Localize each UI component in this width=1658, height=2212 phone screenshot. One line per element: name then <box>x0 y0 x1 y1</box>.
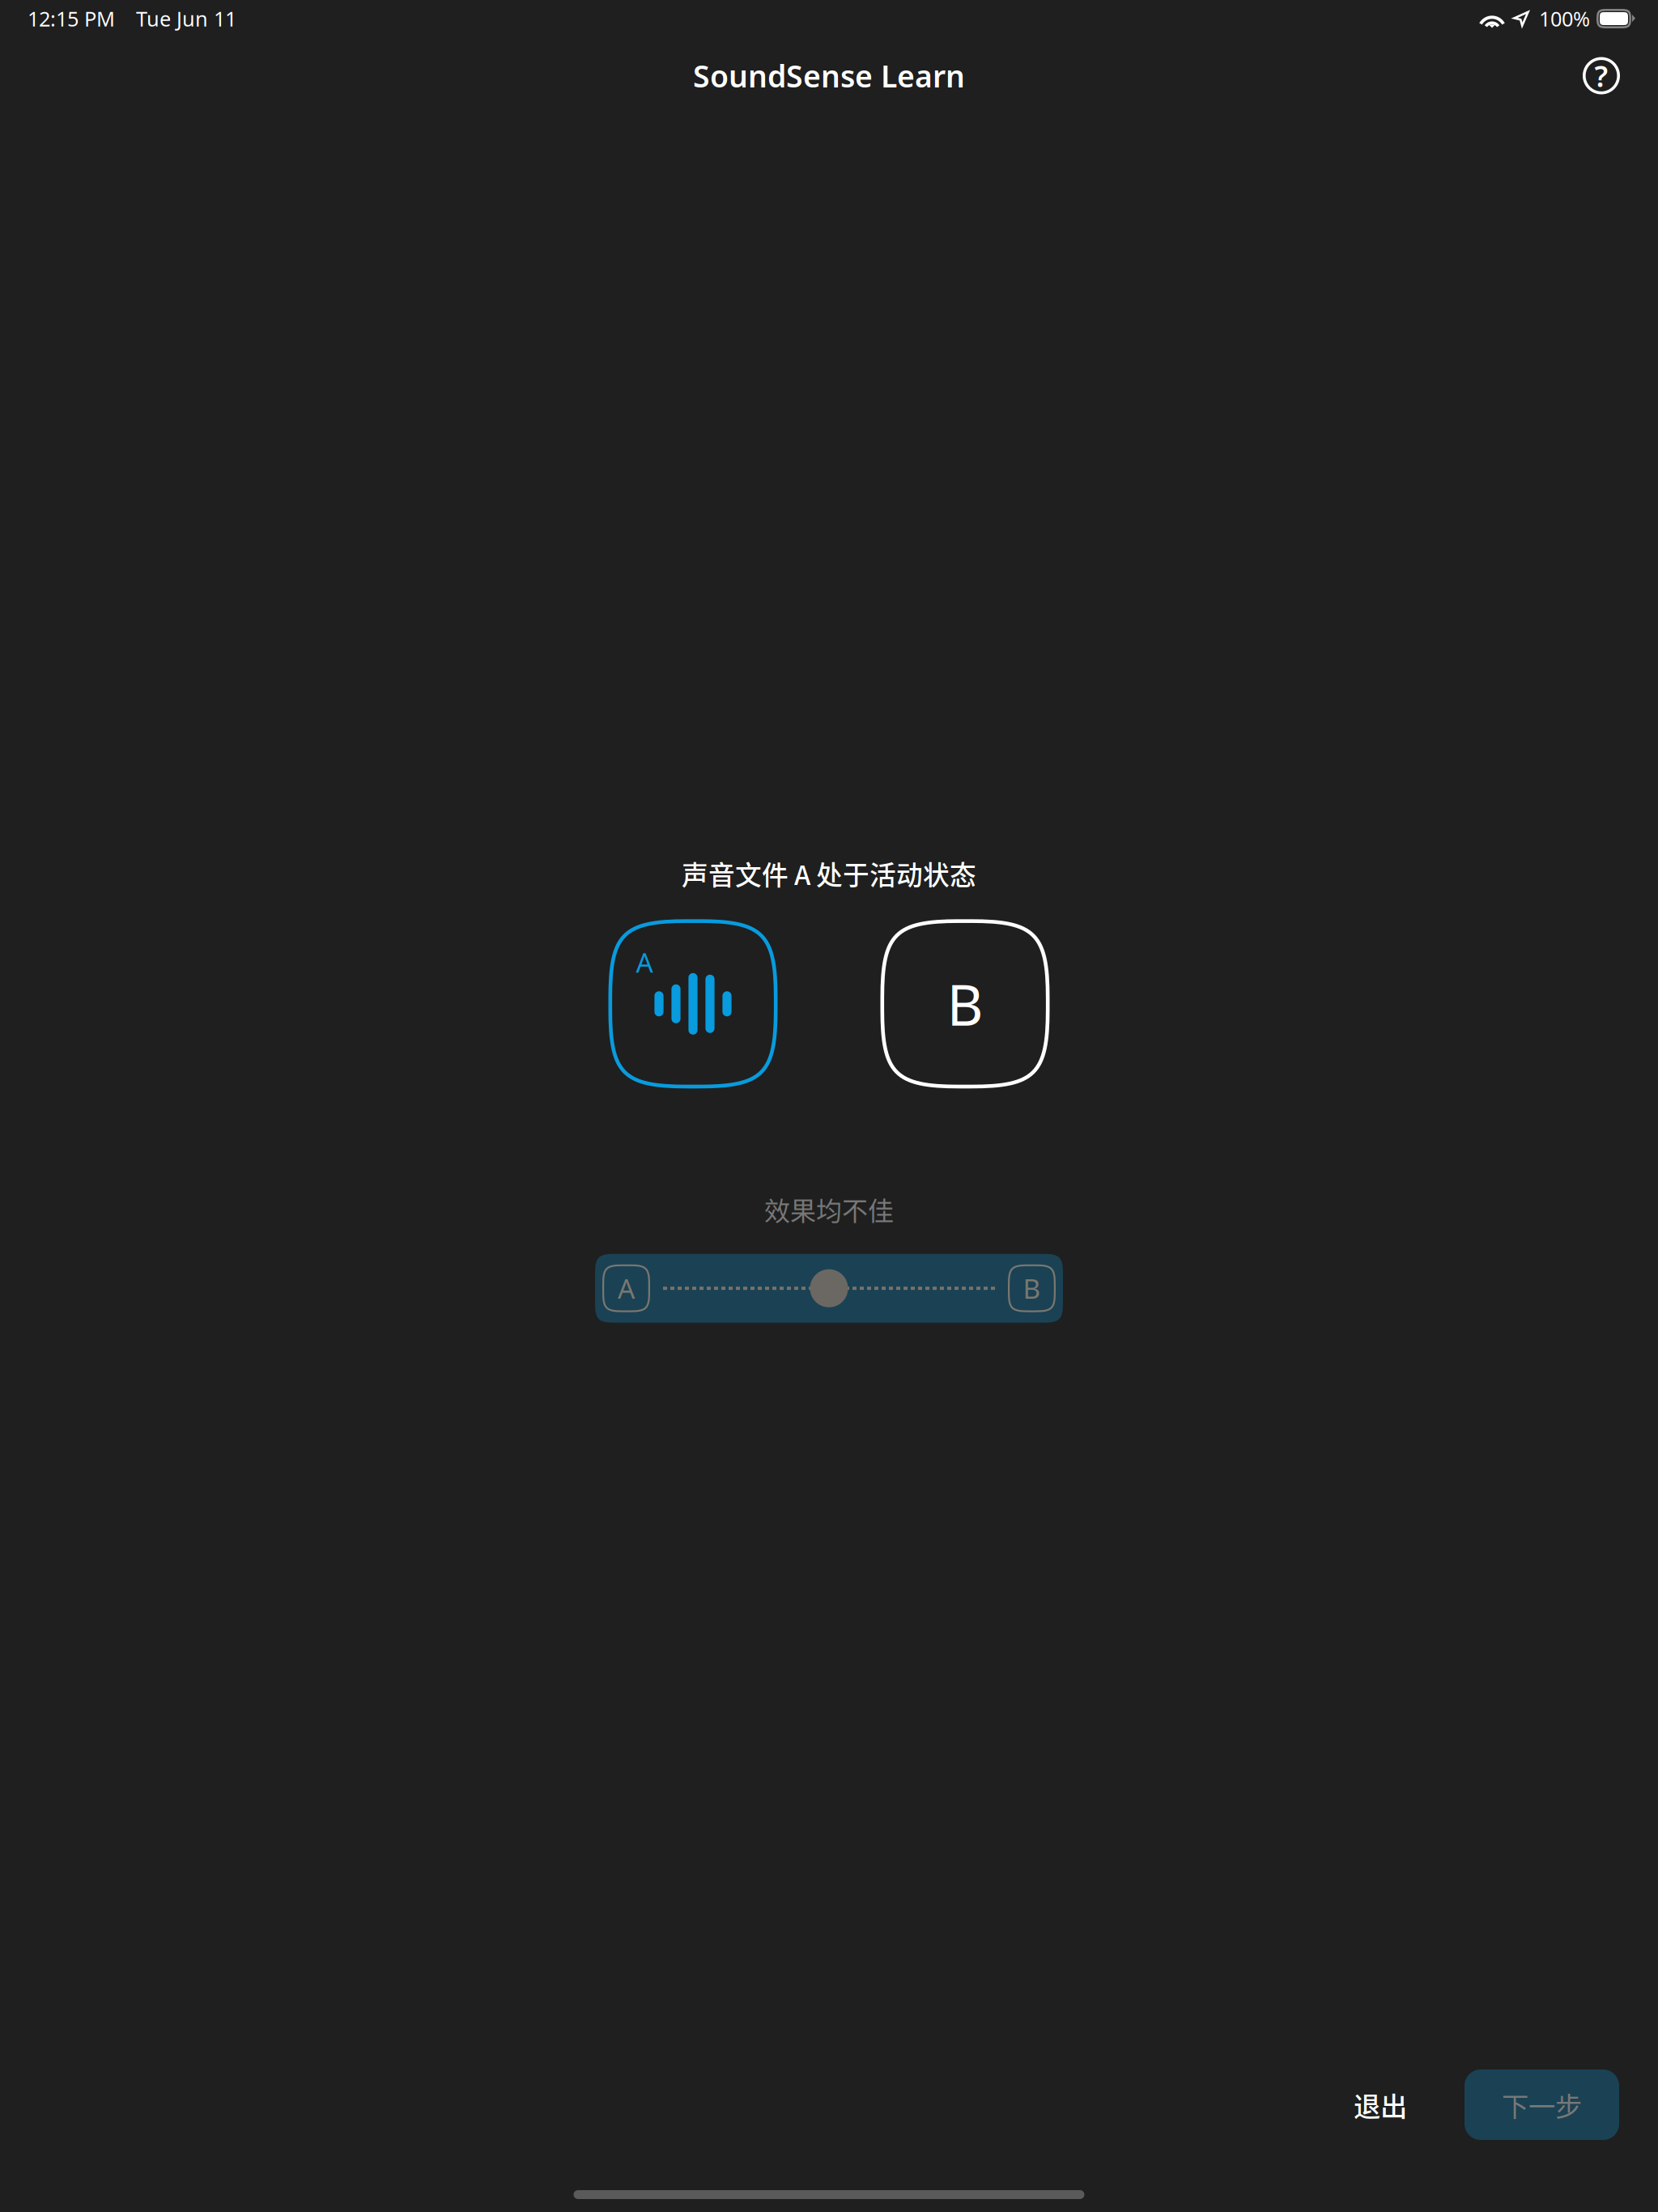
staticText: B <box>1023 1270 1041 1306</box>
staticText: 声音文件 A 处于活动状态 <box>682 854 976 892</box>
button[interactable]: 下一步 <box>1465 2069 1619 2140</box>
button[interactable]: Sound file A <box>608 919 778 1088</box>
button[interactable]: A to B preference slider <box>595 1254 1063 1323</box>
staticText: Tue Jun 11 <box>136 5 236 32</box>
staticText: 退出 <box>1354 2085 1407 2124</box>
staticText: 下一步 <box>1502 2085 1582 2124</box>
staticText: ? <box>1594 56 1608 95</box>
staticText: SoundSense Learn <box>693 56 965 96</box>
button[interactable]: 退出 <box>1337 2069 1424 2140</box>
staticText: 效果均不佳 <box>764 1190 894 1228</box>
staticText: B <box>947 967 983 1041</box>
button[interactable]: Sound file B <box>880 919 1050 1088</box>
staticText: A <box>618 1270 635 1306</box>
staticText: 100% <box>1539 5 1590 32</box>
staticText: 12:15 PM <box>28 5 115 32</box>
button[interactable]: Help <box>1570 44 1633 107</box>
staticText: A <box>636 944 653 980</box>
